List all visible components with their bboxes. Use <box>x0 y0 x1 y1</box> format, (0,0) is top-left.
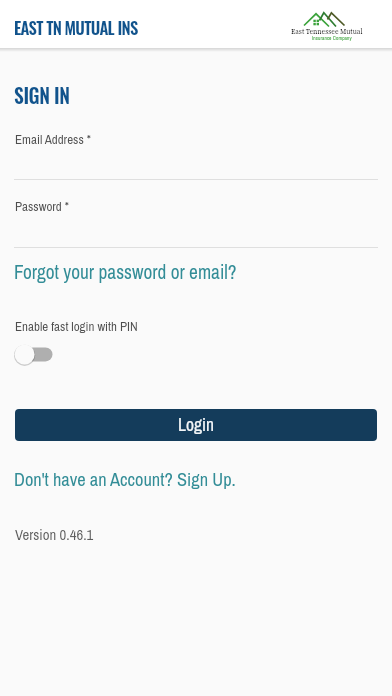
staticText: EAST TN MUTUAL INS <box>14 15 138 39</box>
staticText: SIGN IN <box>14 81 70 110</box>
staticText: Don't have an Account? Sign Up. <box>14 467 236 492</box>
staticText: Enable fast login with PIN <box>15 318 138 336</box>
staticText: Login <box>178 413 214 437</box>
staticText: Password * <box>15 198 69 216</box>
staticText: Version 0.46.1 <box>15 525 94 545</box>
staticText: East Tennessee Mutual <box>291 27 363 37</box>
staticText: Forgot your password or email? <box>14 259 237 285</box>
staticText: Email Address * <box>15 131 91 149</box>
staticText: Insurance Company <box>312 35 352 42</box>
